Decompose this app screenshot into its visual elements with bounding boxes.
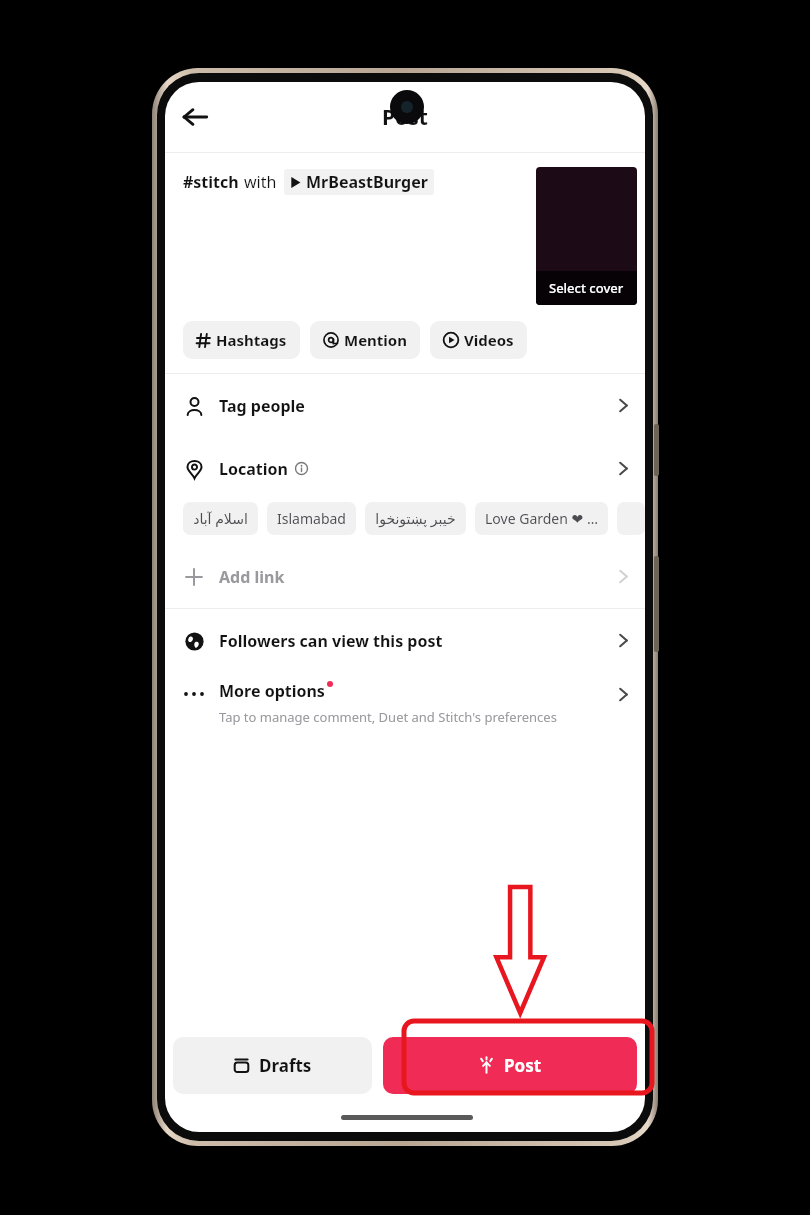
staticText: Tap to manage comment, Duet and Stitch's…	[219, 708, 557, 726]
staticText: اسلام آباد	[193, 509, 248, 528]
button[interactable]: MrBeastBurger	[284, 169, 434, 195]
staticText: Select cover	[549, 279, 624, 297]
button[interactable]: خیبر پښتونخوا	[365, 502, 466, 535]
staticText: خیبر پښتونخوا	[375, 509, 456, 528]
button[interactable]: اسلام آباد	[183, 502, 258, 535]
staticText: with	[244, 171, 277, 193]
button[interactable]: Love Garden ❤️ …	[475, 502, 608, 535]
staticText: Add link	[219, 566, 285, 588]
button[interactable]: Tag people	[165, 374, 645, 437]
staticText: MrBeastBurger	[306, 171, 428, 193]
button[interactable]: Followers can view this post	[165, 609, 645, 672]
staticText: Islamabad	[277, 509, 346, 528]
staticText: Hashtags	[216, 330, 287, 350]
button[interactable]: Location	[165, 437, 645, 500]
button[interactable]: Add link	[165, 545, 645, 608]
button[interactable]: Post	[383, 1037, 637, 1094]
staticText: Post	[504, 1054, 542, 1077]
staticText: Drafts	[259, 1054, 312, 1077]
button[interactable]: Islamabad	[267, 502, 356, 535]
button[interactable]: Select cover	[536, 167, 637, 305]
button[interactable]: Videos	[430, 321, 527, 359]
staticText: Tag people	[219, 395, 305, 417]
button[interactable]: Mention	[310, 321, 420, 359]
button[interactable]: Drafts	[173, 1037, 372, 1094]
staticText: Mention	[344, 330, 407, 350]
staticText: Love Garden ❤️ …	[485, 509, 598, 528]
staticText: Location	[219, 458, 288, 480]
staticText: #stitch	[183, 171, 239, 193]
staticText: Followers can view this post	[219, 630, 443, 652]
staticText: Post	[382, 103, 428, 132]
button[interactable]: Back	[171, 93, 219, 141]
button[interactable]: More options	[165, 672, 645, 746]
staticText: More options	[219, 680, 325, 702]
button[interactable]: Hashtags	[183, 321, 300, 359]
staticText: Videos	[464, 330, 514, 350]
